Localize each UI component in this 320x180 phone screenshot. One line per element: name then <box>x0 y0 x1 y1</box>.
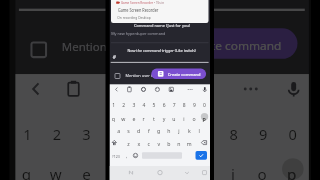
button[interactable]: Create command screen <box>0 0 320 180</box>
